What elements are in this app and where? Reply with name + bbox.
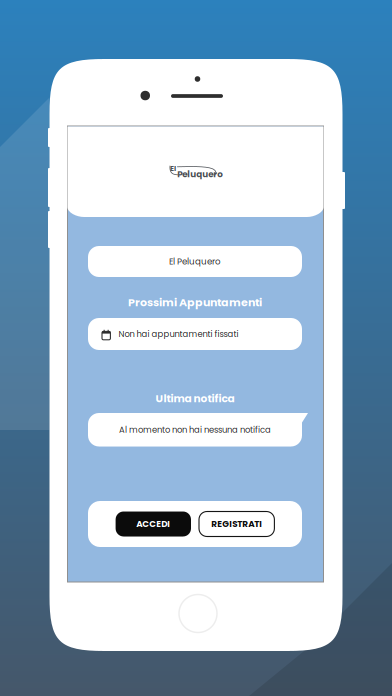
staticText: REGISTRATI [211, 518, 262, 530]
staticText: Non hai appuntamenti fissati [118, 328, 238, 340]
button[interactable]: REGISTRATI [199, 511, 274, 536]
staticText: Prossimi Appuntamenti [128, 295, 262, 310]
staticText: El [170, 163, 176, 174]
button[interactable]: ACCEDI [116, 511, 191, 536]
staticText: Ultima notifica [155, 391, 234, 406]
staticText: Al momento non hai nessuna notifica [119, 424, 271, 436]
staticText: Peluquero [177, 168, 223, 180]
button[interactable]: El Peluquero [88, 246, 302, 277]
staticText: El Peluquero [169, 255, 221, 267]
staticText: ACCEDI [136, 518, 170, 530]
